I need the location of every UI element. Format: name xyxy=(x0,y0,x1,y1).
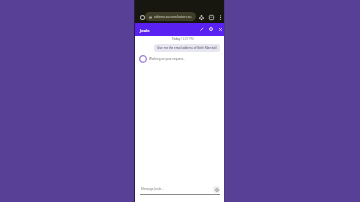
staticText: Working on your request... xyxy=(149,57,186,61)
button[interactable]: Send xyxy=(213,186,220,193)
button[interactable]: More options xyxy=(216,13,224,21)
button[interactable]: Close xyxy=(216,25,224,33)
button[interactable]: Give me the email address of Keith Marsh… xyxy=(154,44,220,52)
staticText: Message Joule... xyxy=(141,187,164,191)
button[interactable]: New chat xyxy=(198,25,206,33)
button[interactable]: aidemo.successfactors.eu xyxy=(145,12,196,21)
button[interactable]: Tabs xyxy=(207,13,215,21)
button[interactable]: Share xyxy=(197,13,205,21)
staticText: aidemo.successfactors.eu xyxy=(154,15,192,19)
button[interactable]: Settings xyxy=(207,25,215,33)
staticText: Today xyxy=(172,37,181,41)
staticText: Give me the email address of Keith Marsh… xyxy=(157,46,217,50)
staticText: Joule xyxy=(140,28,150,33)
staticText: 12:07 PM xyxy=(181,37,194,41)
button[interactable]: Page info xyxy=(138,13,146,21)
